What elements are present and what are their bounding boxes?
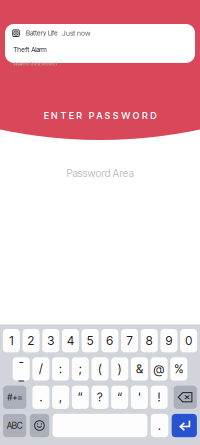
button[interactable]: / (32, 357, 49, 381)
button[interactable]: 9 (160, 329, 177, 352)
staticText: 6 (106, 333, 113, 348)
button[interactable]: : (52, 357, 69, 381)
staticText: ' (138, 390, 141, 404)
staticText: % (174, 362, 183, 376)
staticText: Just now (62, 29, 91, 37)
button[interactable]: . (32, 386, 49, 409)
button[interactable]: “ (111, 386, 128, 409)
button[interactable]: Return (172, 414, 197, 437)
button[interactable]: Delete (174, 386, 197, 409)
staticText: Alarm triggered (13, 60, 57, 68)
button[interactable]: ; (72, 357, 89, 381)
staticText: - (19, 354, 24, 369)
staticText: 3 (47, 333, 54, 348)
button[interactable]: , (52, 386, 69, 409)
button[interactable]: & (131, 357, 148, 381)
staticText: , (59, 390, 62, 404)
button[interactable]: % (170, 357, 187, 381)
staticText: ENTER PASSWORD (44, 110, 156, 121)
button[interactable]: #+= (3, 386, 26, 409)
button[interactable]: Battery Life (5, 24, 195, 65)
staticText: 9 (165, 333, 172, 348)
button[interactable]: ? (91, 386, 108, 409)
staticText: 4 (67, 333, 74, 348)
staticText: ) (118, 362, 122, 376)
staticText: Battery Life (26, 29, 58, 37)
staticText: 0 (185, 333, 192, 348)
button[interactable]: 5 (82, 329, 99, 352)
button[interactable]: . (151, 414, 168, 437)
button[interactable]: ” (72, 386, 89, 409)
button[interactable]: ! (151, 386, 168, 409)
staticText: : (59, 362, 62, 376)
button[interactable]: ABC (3, 414, 26, 437)
button[interactable]: ' (131, 386, 148, 409)
staticText: ” (78, 390, 83, 404)
button[interactable]: 7 (121, 329, 138, 352)
staticText: Theft Alarm (13, 46, 46, 54)
staticText: 8 (146, 333, 153, 348)
button[interactable]: 4 (62, 329, 79, 352)
staticText: 5 (87, 333, 94, 348)
button[interactable]: 6 (101, 329, 118, 352)
staticText: . (158, 418, 161, 433)
staticText: #+= (7, 392, 22, 402)
staticText: ( (98, 362, 102, 376)
staticText: 2 (27, 333, 34, 348)
button[interactable]: Emoji (30, 414, 49, 437)
button[interactable]: 1 (3, 329, 20, 352)
staticText: & (136, 362, 143, 376)
staticText: / (39, 362, 43, 376)
button[interactable]: 3 (42, 329, 59, 352)
staticText: ABC (7, 420, 23, 431)
button[interactable]: ( (91, 357, 108, 381)
staticText: ; (79, 362, 82, 376)
button[interactable]: 2 (22, 329, 39, 352)
staticText: “ (117, 390, 122, 404)
button[interactable]: - (13, 357, 30, 381)
button[interactable]: @ (151, 357, 168, 381)
staticText: @ (154, 362, 165, 376)
staticText: Password Area (66, 167, 133, 180)
staticText: _ (19, 369, 24, 383)
button[interactable]: 0 (180, 329, 197, 352)
staticText: ? (97, 390, 103, 404)
button[interactable]: 8 (141, 329, 158, 352)
button[interactable]: ) (111, 357, 128, 381)
staticText: 1 (9, 333, 13, 348)
staticText: ! (158, 390, 161, 404)
staticText: 7 (126, 333, 132, 348)
staticText: . (39, 390, 42, 404)
